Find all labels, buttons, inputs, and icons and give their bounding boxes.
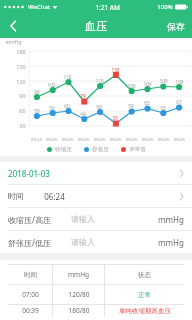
staticText: 09:25 (142, 136, 153, 142)
staticText: 09:25 (46, 136, 57, 142)
staticText: 88 (34, 89, 40, 96)
staticText: 132 (111, 67, 120, 74)
staticText: 00:39 (22, 306, 39, 315)
staticText: 150 (16, 63, 26, 70)
staticText: 118 (63, 74, 72, 81)
staticText: 正常 (138, 291, 151, 299)
button[interactable]: 收缩压/高压 (0, 208, 192, 230)
staticText: 单纯收缩期高血压 (119, 307, 171, 315)
staticText: 58 (96, 104, 102, 111)
staticText: mmHg (158, 214, 184, 225)
staticText: 35 (112, 115, 118, 122)
staticText: 血压 (85, 19, 107, 33)
staticText: 120/80 (68, 290, 90, 299)
staticText: 79 (80, 93, 86, 100)
staticText: 120 (16, 78, 26, 85)
button[interactable]: Back (0, 14, 26, 38)
staticText: 60 (64, 103, 70, 110)
staticText: 110 (95, 78, 104, 85)
staticText: 180 (16, 48, 26, 55)
staticText: 56 (160, 105, 166, 112)
staticText: 65 (144, 100, 150, 107)
staticText: 舒张压 (92, 146, 109, 153)
staticText: 时间 (8, 191, 24, 201)
button[interactable]: 保存 (160, 14, 192, 38)
staticText: 舒张压/低压 (8, 237, 51, 248)
staticText: mmHg (5, 39, 22, 46)
staticText: 1:21 AM (95, 3, 120, 12)
staticText: mmHg (68, 270, 89, 279)
staticText: 102 (47, 82, 56, 89)
staticText: 180/80 (68, 306, 90, 315)
staticText: mmHg (158, 237, 184, 248)
staticText: 50 (34, 108, 40, 115)
staticText: 108 (175, 79, 184, 86)
staticText: 09:25 (31, 136, 42, 142)
staticText: 09:25 (126, 136, 137, 142)
staticText: 09:25 (62, 136, 73, 142)
staticText: 请输入 (71, 214, 95, 224)
staticText: 07:00 (22, 290, 39, 299)
staticText: 56 (49, 105, 55, 112)
staticText: 保存 (167, 21, 185, 32)
staticText: 09:25 (94, 136, 105, 142)
staticText: 104 (143, 81, 152, 88)
staticText: 109 (159, 78, 168, 85)
staticText: 60 (19, 107, 26, 114)
staticText: 90 (19, 92, 26, 99)
staticText: 09:25 (174, 136, 185, 142)
staticText: 09:25 (110, 136, 121, 142)
staticText: 异常值 (129, 146, 146, 153)
staticText: 100% (157, 3, 173, 11)
staticText: 请输入 (71, 237, 95, 247)
staticText: 收缩压/高压 (8, 214, 51, 225)
staticText: 06:24 (44, 191, 65, 202)
button[interactable]: 2018-01-03 (0, 162, 192, 184)
staticText: 09:25 (78, 136, 89, 142)
staticText: 100 (127, 83, 136, 90)
staticText: 收缩压 (55, 146, 72, 153)
button[interactable]: 舒张压/低压 (0, 231, 192, 253)
staticText: 30 (19, 122, 26, 129)
staticText: 2018-01-03 (8, 168, 50, 179)
staticText: 59 (128, 103, 134, 110)
button[interactable]: 时间 (0, 185, 192, 207)
staticText: 09:25 (158, 136, 169, 142)
staticText: 44 (80, 111, 86, 118)
staticText: WeChat (28, 3, 50, 11)
staticText: 时间 (24, 271, 37, 279)
staticText: 67 (176, 99, 182, 106)
staticText: 状态 (138, 271, 151, 279)
